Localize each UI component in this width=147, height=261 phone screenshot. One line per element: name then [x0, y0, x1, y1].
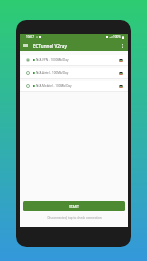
staticText: ECTunnel V2ray [33, 43, 67, 49]
staticText: N/A Mobitel - 100Mb/Day [36, 84, 72, 88]
staticText: N/A VPN - 1000Mb/Day [36, 58, 69, 62]
button[interactable]: Open navigation menu [21, 40, 30, 51]
button[interactable]: N/A VPN - 1000Mb/Day [21, 55, 127, 65]
staticText: Disconnected, tap to check connection [47, 216, 102, 220]
staticText: START [69, 204, 79, 209]
staticText: 100% [113, 35, 121, 39]
staticText: N/A Airtel - 100Mb/Day [36, 71, 69, 75]
button[interactable]: START [23, 201, 125, 211]
staticText: 10:07 [26, 35, 34, 39]
button[interactable]: More options [118, 40, 126, 51]
button[interactable]: N/A Airtel - 100Mb/Day [21, 68, 127, 78]
button[interactable]: N/A Mobitel - 100Mb/Day [21, 81, 127, 91]
